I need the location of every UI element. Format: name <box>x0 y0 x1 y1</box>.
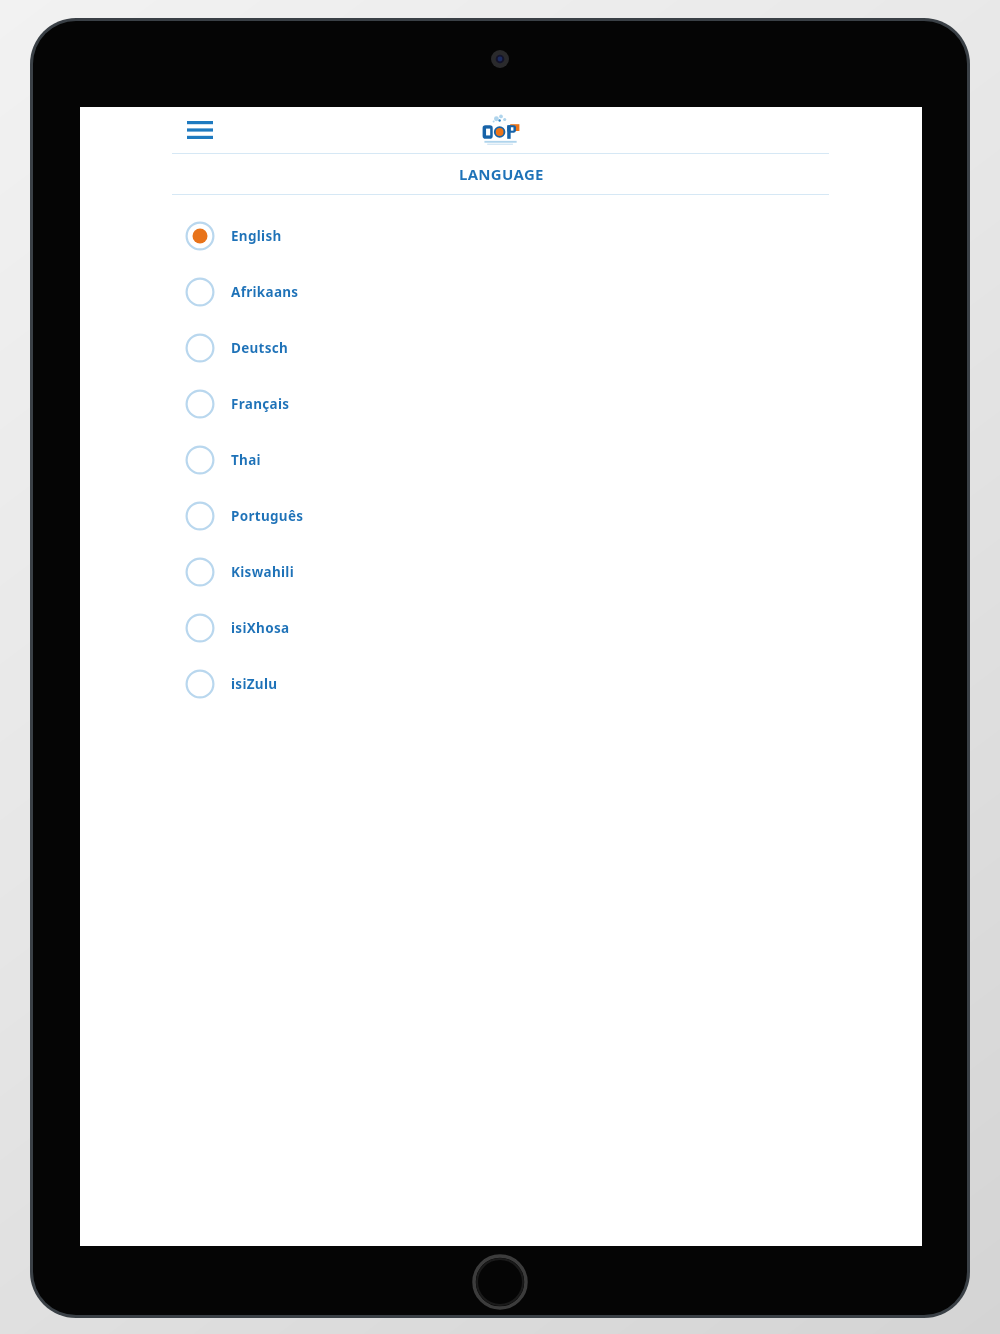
staticText: isiZulu <box>231 675 278 693</box>
staticText: Deutsch <box>231 339 289 357</box>
staticText: Afrikaans <box>231 283 299 301</box>
staticText: Français <box>231 395 290 413</box>
staticText: Kiswahili <box>231 563 294 581</box>
button[interactable]: English <box>80 208 922 264</box>
button[interactable]: Kiswahili <box>80 544 922 600</box>
button[interactable]: isiZulu <box>80 656 922 712</box>
button[interactable]: Afrikaans <box>80 264 922 320</box>
button[interactable]: Deutsch <box>80 320 922 376</box>
button[interactable]: isiXhosa <box>80 600 922 656</box>
button[interactable]: Português <box>80 488 922 544</box>
staticText: Thai <box>231 451 261 469</box>
staticText: English <box>231 227 282 245</box>
staticText: LANGUAGE <box>459 164 544 184</box>
button[interactable]: Français <box>80 376 922 432</box>
button[interactable]: Open navigation menu <box>178 108 222 152</box>
staticText: isiXhosa <box>231 619 290 637</box>
button[interactable]: Thai <box>80 432 922 488</box>
staticText: Português <box>231 507 304 525</box>
